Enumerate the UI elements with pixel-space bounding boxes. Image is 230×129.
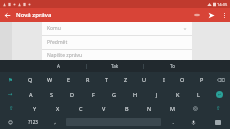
button[interactable]: Hide keyboard [205, 115, 230, 129]
staticText: Y [33, 105, 37, 112]
button[interactable]: More options [218, 9, 230, 21]
staticText: Nová zpráva [16, 11, 52, 19]
button[interactable]: Z [116, 72, 135, 87]
staticText: To [170, 63, 175, 69]
staticText: K [176, 91, 180, 98]
staticText: E [67, 76, 71, 83]
staticText: G [112, 91, 117, 98]
button[interactable]: T [97, 72, 116, 87]
staticText: Tak [111, 63, 119, 69]
button[interactable]: A [30, 60, 86, 72]
staticText: ?123 [28, 119, 38, 125]
staticText: V [102, 105, 106, 112]
button[interactable]: Komu [42, 22, 192, 36]
staticText: Napište zprávu [47, 52, 83, 59]
staticText: D [70, 91, 75, 98]
staticText: U [142, 76, 147, 83]
staticText: , [54, 119, 56, 125]
button[interactable]: G [104, 87, 125, 101]
button[interactable]: V [92, 101, 115, 115]
staticText: O [180, 76, 185, 83]
button[interactable]: A [20, 87, 41, 101]
button[interactable]: Back [0, 8, 14, 22]
button[interactable]: ⇧ [0, 101, 23, 115]
staticText: I [163, 76, 165, 83]
button[interactable]: Tak [87, 60, 143, 72]
button[interactable]: E [59, 72, 78, 87]
staticText: C [79, 105, 83, 112]
staticText: M [170, 105, 175, 112]
button[interactable]: Enter [209, 87, 230, 101]
staticText: ☺ [8, 120, 13, 125]
button[interactable]: D [62, 87, 83, 101]
staticText: A [29, 91, 33, 98]
button[interactable]: B [115, 101, 138, 115]
button[interactable]: → [0, 87, 20, 101]
staticText: L [197, 91, 200, 98]
button[interactable]: ⇧ [207, 101, 230, 115]
staticText: J [156, 91, 158, 98]
button[interactable]: C [69, 101, 92, 115]
button[interactable]: P [192, 72, 211, 87]
button[interactable]: , [45, 115, 64, 129]
staticText: ⌫ [217, 77, 225, 83]
staticText: Předmět [47, 39, 68, 46]
button[interactable]: . [163, 115, 182, 129]
staticText: ⇧ [216, 105, 221, 111]
staticText: N [147, 105, 152, 112]
staticText: ⚑ [8, 77, 13, 83]
button[interactable]: ?123 [20, 115, 45, 129]
button[interactable]: R [78, 72, 97, 87]
staticText: ↵ [218, 92, 222, 97]
button[interactable]: ☺ [0, 115, 20, 129]
button[interactable]: X [46, 101, 69, 115]
button[interactable]: ◎ [184, 101, 207, 115]
staticText: W [47, 76, 53, 83]
button[interactable]: Y [23, 101, 46, 115]
staticText: R [86, 76, 90, 83]
staticText: P [200, 76, 204, 83]
staticText: → [8, 91, 13, 97]
button[interactable]: ⚑ [0, 72, 20, 87]
button[interactable]: Attach [190, 8, 204, 22]
button[interactable]: Send [204, 8, 218, 22]
staticText: Z [124, 76, 128, 83]
button[interactable]: I [154, 72, 173, 87]
button[interactable]: ⌫ [211, 72, 230, 87]
button[interactable]: H [125, 87, 146, 101]
button[interactable]: Voice input [182, 115, 205, 129]
staticText: 14:05 [217, 2, 228, 7]
button[interactable]: K [167, 87, 188, 101]
staticText: H [133, 91, 138, 98]
button[interactable]: L [188, 87, 209, 101]
staticText: T [105, 76, 109, 83]
staticText: X [56, 105, 60, 112]
button[interactable]: To [144, 60, 200, 72]
staticText: Q [28, 76, 33, 83]
staticText: A [57, 63, 60, 69]
staticText: ⇧ [9, 105, 14, 111]
button[interactable]: F [83, 87, 104, 101]
button[interactable]: J [146, 87, 167, 101]
button[interactable]: M [161, 101, 184, 115]
staticText: ◎ [193, 105, 198, 111]
staticText: Komu [47, 25, 61, 32]
button[interactable]: Předmět [42, 36, 192, 50]
button[interactable]: S [41, 87, 62, 101]
button[interactable]: O [173, 72, 192, 87]
button[interactable]: Q [20, 72, 40, 87]
button[interactable]: U [135, 72, 154, 87]
staticText: S [50, 91, 54, 98]
button[interactable]: N [138, 101, 161, 115]
staticText: B [125, 105, 129, 112]
button[interactable]: Napište zprávu [42, 50, 192, 60]
button[interactable]: W [40, 72, 59, 87]
staticText: F [92, 91, 95, 98]
staticText: . [172, 119, 174, 125]
